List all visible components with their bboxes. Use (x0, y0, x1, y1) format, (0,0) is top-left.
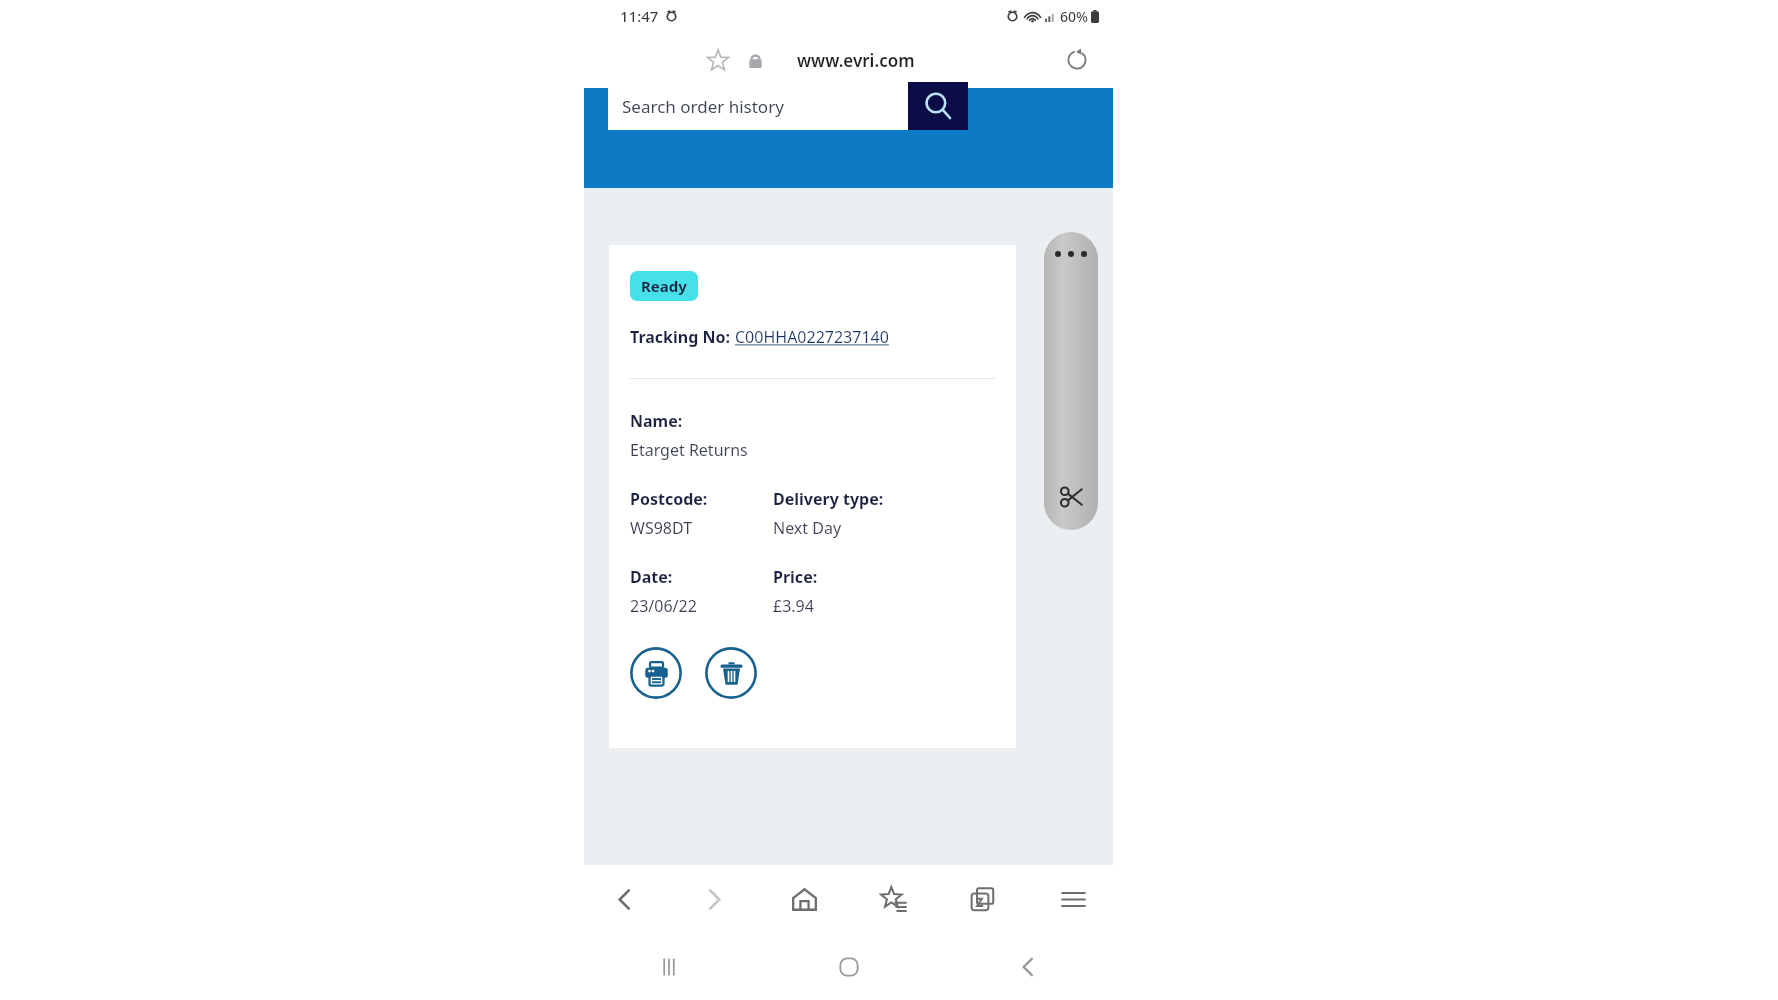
staticText: Name: (630, 410, 773, 432)
staticText: Date: (630, 566, 773, 588)
staticText: Tracking No: (630, 326, 735, 348)
button[interactable]: Back (598, 873, 650, 925)
staticText: Postcode: (630, 488, 773, 510)
button[interactable]: Print label (630, 647, 682, 699)
button[interactable]: Home (778, 873, 830, 925)
button[interactable]: Bookmarks (867, 873, 919, 925)
staticText: www.evri.com (797, 49, 915, 72)
staticText: £3.94 (773, 595, 814, 617)
button[interactable]: Edge panel (1044, 232, 1098, 530)
button[interactable]: Site security (740, 45, 770, 75)
staticText: Price: (773, 566, 818, 588)
staticText: 60% (1060, 7, 1088, 26)
button[interactable]: Menu (1047, 873, 1099, 925)
staticText: Delivery type: (773, 488, 884, 510)
staticText: 23/06/22 (630, 595, 773, 617)
staticText: Etarget Returns (630, 439, 773, 461)
button[interactable]: Search (908, 82, 968, 130)
button[interactable]: Forward (688, 873, 740, 925)
button[interactable]: Tabs (957, 873, 1009, 925)
staticText: Ready (641, 276, 687, 296)
button[interactable]: Back (1001, 940, 1055, 994)
button[interactable]: Delete (705, 647, 757, 699)
button[interactable]: C00HHA0227237140 (735, 326, 889, 348)
staticText: Next Day (773, 517, 842, 539)
staticText: 11:47 (620, 6, 659, 26)
staticText: WS98DT (630, 517, 773, 539)
button[interactable]: Search order history (608, 82, 908, 130)
staticText: Search order history (622, 95, 784, 118)
button[interactable]: Home (822, 940, 876, 994)
button[interactable]: Ready (630, 271, 698, 301)
button[interactable]: Reload (1057, 40, 1097, 80)
button[interactable]: Recents (642, 940, 696, 994)
button[interactable]: Bookmark (701, 43, 735, 77)
